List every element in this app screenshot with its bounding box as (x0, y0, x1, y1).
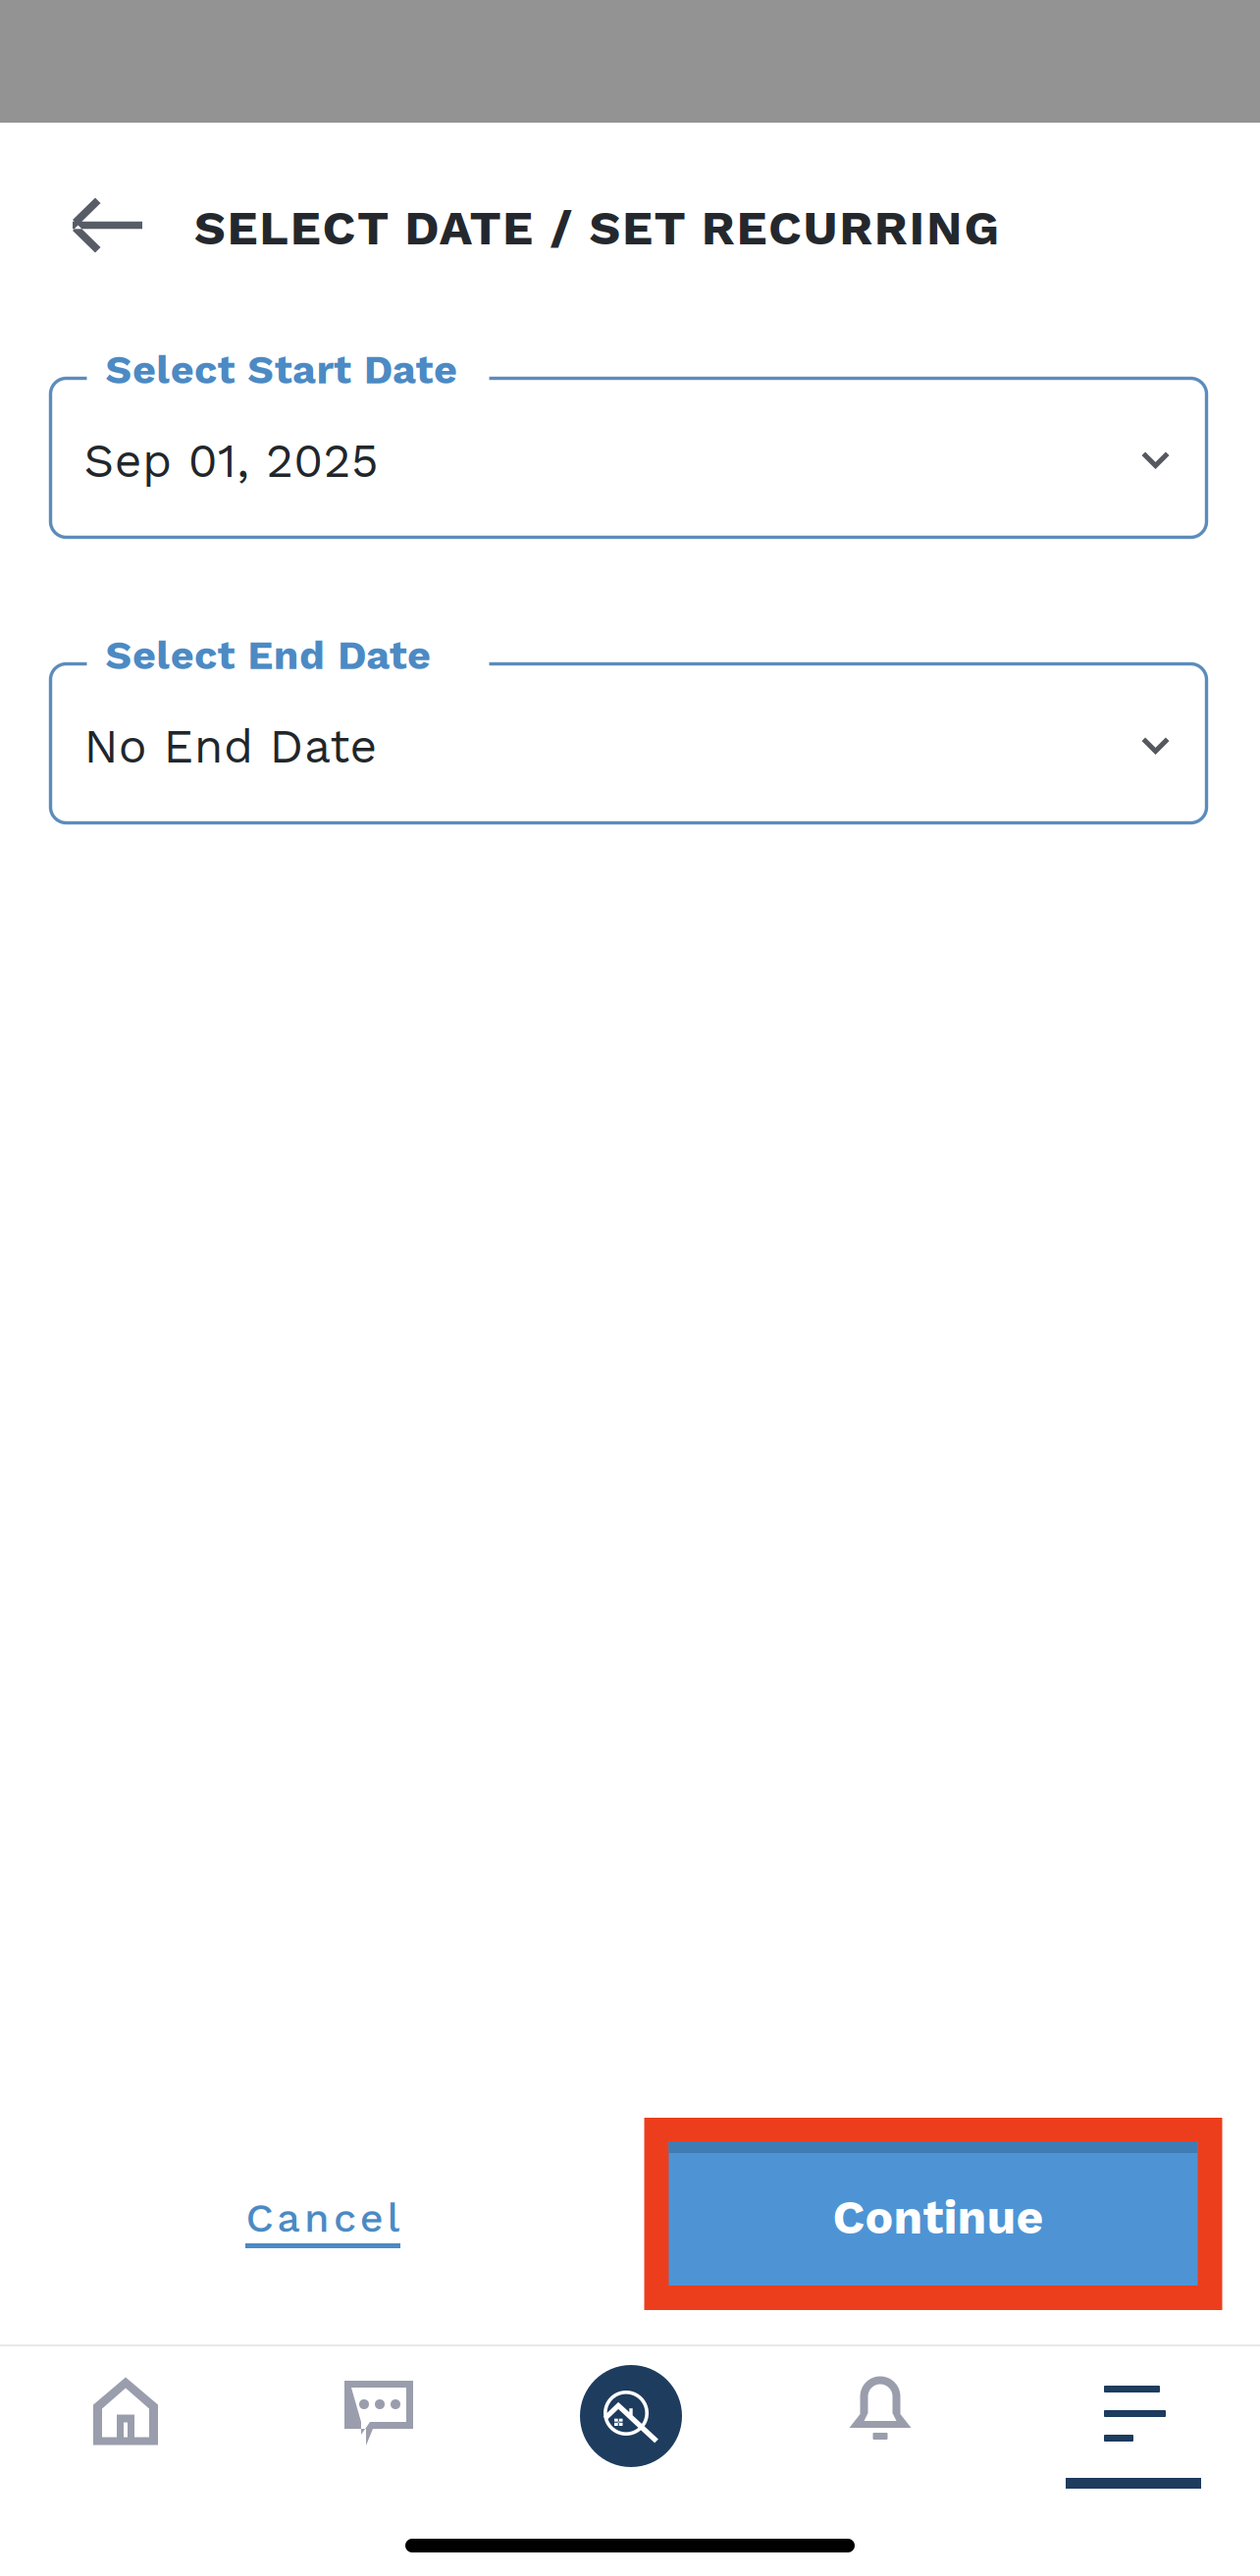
staticText: SELECT DATE / SET RECURRING (194, 199, 1000, 256)
button[interactable]: Cancel (205, 2192, 441, 2300)
button[interactable]: Notifications (755, 2330, 1006, 2479)
staticText: Sep 01, 2025 (84, 433, 379, 488)
button[interactable]: Sep 01, 2025 (51, 358, 1207, 537)
button[interactable]: Menu (1036, 2360, 1260, 2509)
button[interactable]: Search properties (505, 2341, 757, 2491)
button[interactable]: Messages (253, 2339, 504, 2488)
button[interactable]: Back (42, 169, 170, 283)
staticText: No End Date (84, 719, 377, 774)
staticText: Cancel (246, 2194, 400, 2242)
button[interactable]: Home (0, 2337, 251, 2486)
button[interactable]: Continue (669, 2141, 1198, 2286)
staticText: Select Start Date (105, 346, 457, 393)
button[interactable]: No End Date (51, 643, 1207, 823)
staticText: Select End Date (105, 631, 431, 679)
staticText: Continue (833, 2190, 1044, 2245)
